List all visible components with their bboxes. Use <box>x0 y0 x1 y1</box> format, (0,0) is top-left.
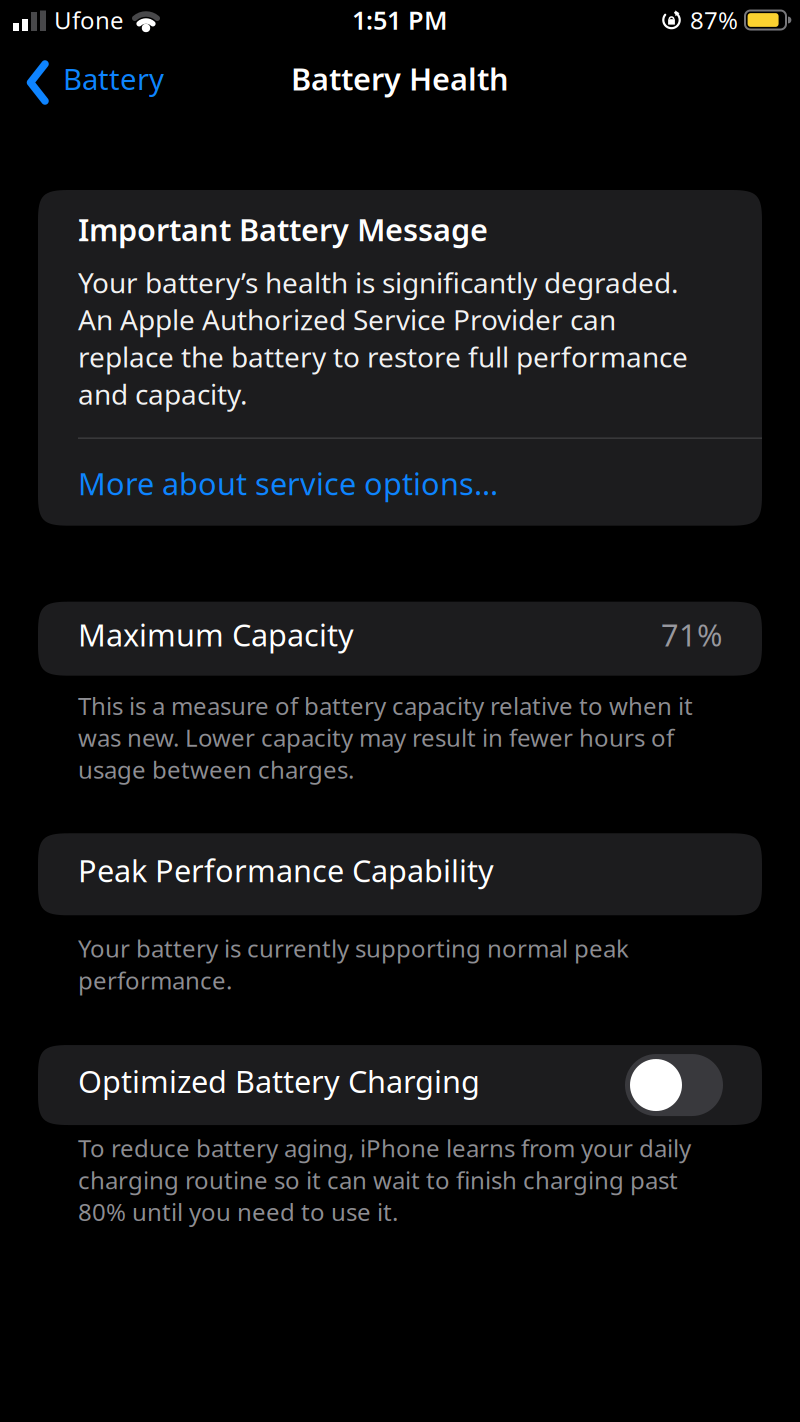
staticText: Optimized Battery Charging <box>78 1061 480 1101</box>
staticText: Ufone <box>54 4 124 36</box>
staticText: 87% <box>690 4 738 36</box>
staticText: Maximum Capacity <box>78 614 354 655</box>
staticText: This is a measure of battery capacity re… <box>78 690 693 785</box>
staticText: 71% <box>661 614 722 655</box>
staticText: Your battery is currently supporting nor… <box>78 932 629 996</box>
staticText: To reduce battery aging, iPhone learns f… <box>78 1132 691 1228</box>
button[interactable]: More about service options... <box>78 463 498 504</box>
button[interactable]: Optimized Battery Charging <box>625 1054 723 1116</box>
staticText: More about service options... <box>78 463 498 504</box>
staticText: Battery <box>63 59 164 98</box>
staticText: Battery Health <box>291 58 509 99</box>
staticText: Important Battery Message <box>78 209 488 250</box>
staticText: Peak Performance Capability <box>78 850 494 891</box>
staticText: 1:51 PM <box>352 3 448 37</box>
staticText: Your battery’s health is significantly d… <box>78 264 688 412</box>
button[interactable]: Battery <box>0 62 164 103</box>
